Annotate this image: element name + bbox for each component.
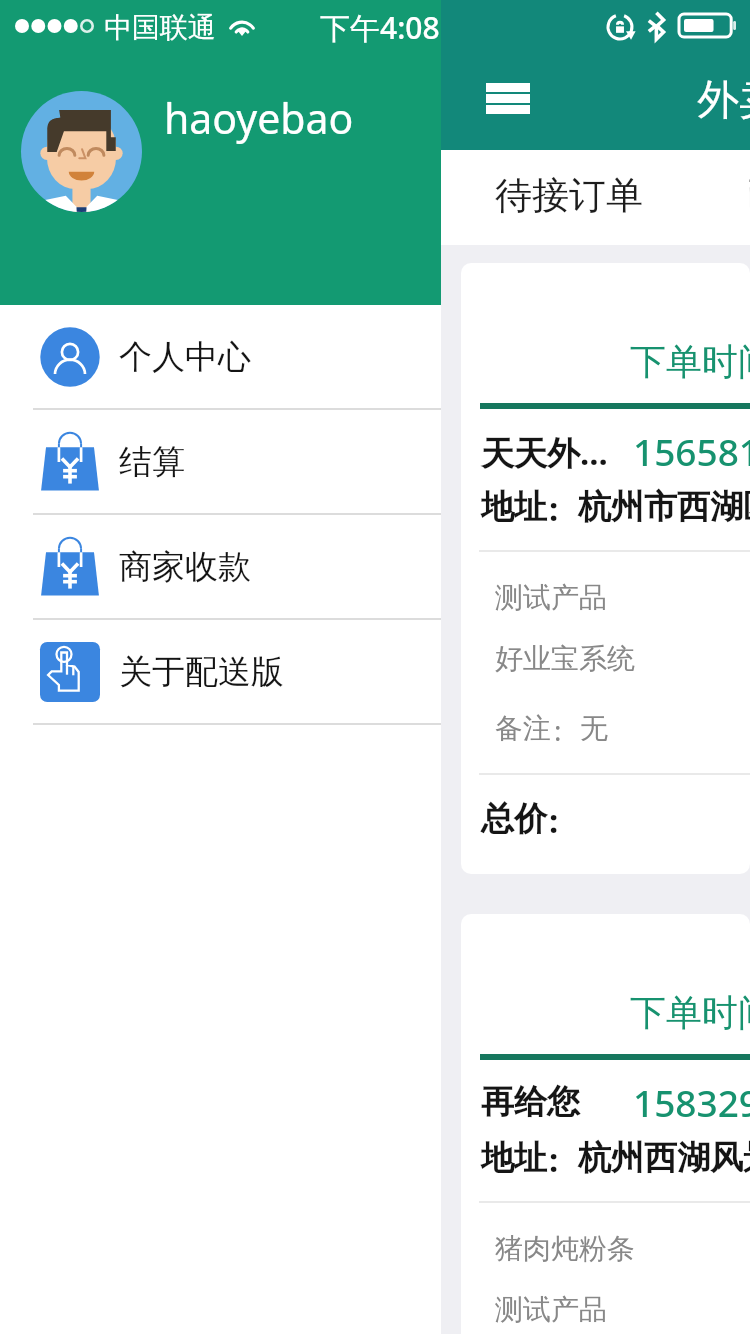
button[interactable] xyxy=(461,914,750,1334)
staticText: 1565815 xyxy=(633,426,750,476)
staticText: 杭州市西湖区 xyxy=(578,486,750,528)
staticText: 无 xyxy=(580,711,608,746)
staticText: 个人中心 xyxy=(119,336,251,378)
staticText: 关于配送版 xyxy=(119,651,284,693)
staticText: 1583295 xyxy=(633,1077,750,1127)
staticText: : xyxy=(549,798,559,843)
staticText: : xyxy=(549,1137,559,1182)
staticText: 好业宝系统 xyxy=(495,641,635,676)
staticText: 待接订单 xyxy=(495,172,643,219)
staticText: 商家收款 xyxy=(119,546,251,588)
staticText: 地址 xyxy=(481,486,547,528)
button[interactable]: Open navigation menu xyxy=(476,72,540,124)
staticText: : xyxy=(549,486,559,531)
button[interactable]: 关于配送版 xyxy=(0,620,441,725)
staticText: : xyxy=(554,711,562,749)
staticText: 中国联通 xyxy=(104,10,216,45)
staticText: 猪肉炖粉条 xyxy=(495,1231,635,1266)
staticText: 测试产品 xyxy=(495,580,607,615)
staticText: 天天外... xyxy=(481,430,608,475)
staticText: 下单时间 xyxy=(630,990,750,1035)
button[interactable]: 个人中心 xyxy=(0,305,441,410)
staticText: 杭州西湖风景 xyxy=(578,1137,750,1179)
staticText: 再给您 xyxy=(481,1081,580,1123)
button[interactable]: 结算 xyxy=(0,410,441,515)
staticText: 下午4:08 xyxy=(320,7,440,48)
staticText: 总价 xyxy=(481,798,547,840)
staticText: haoyebao xyxy=(164,90,354,146)
staticText: 备注 xyxy=(495,711,551,746)
staticText: 结算 xyxy=(119,441,185,483)
staticText: 已 xyxy=(746,172,750,219)
staticText: 地址 xyxy=(481,1137,547,1179)
staticText: 测试产品 xyxy=(495,1292,607,1327)
button[interactable]: 商家收款 xyxy=(0,515,441,620)
staticText: 外卖订单 xyxy=(697,74,750,127)
staticText: 下单时间 xyxy=(630,339,750,384)
button[interactable] xyxy=(461,263,750,874)
